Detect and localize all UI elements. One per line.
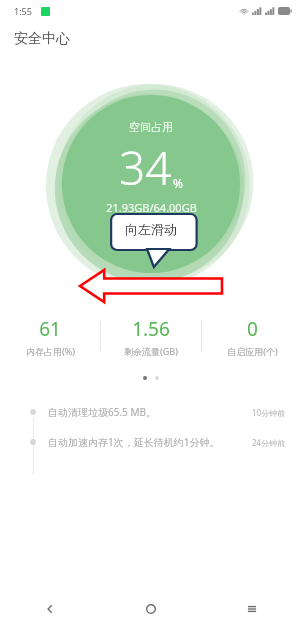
staticText: 0: [247, 316, 258, 342]
button[interactable]: 61: [0, 316, 100, 357]
staticText: 1.56: [132, 316, 170, 342]
staticText: %: [173, 175, 183, 191]
button[interactable]: Home: [100, 590, 201, 628]
staticText: 自动加速内存1次，延长待机约1分钟。: [48, 435, 220, 449]
button[interactable]: 0: [202, 316, 302, 357]
button[interactable]: 1.56: [101, 316, 201, 357]
staticText: 空间占用: [129, 120, 173, 134]
staticText: 21.93GB/64.00GB: [106, 200, 197, 215]
staticText: 自动清理垃圾65.5 MB。: [48, 405, 157, 419]
staticText: 34: [119, 136, 172, 199]
button[interactable]: Recents: [201, 590, 302, 628]
button[interactable]: 自动清理垃圾65.5 MB。: [0, 402, 302, 422]
staticText: 24分钟前: [252, 437, 286, 448]
staticText: 安全中心: [14, 30, 70, 48]
button[interactable]: 自动加速内存1次，延长待机约1分钟。: [0, 432, 302, 452]
staticText: 10分钟前: [252, 407, 286, 418]
staticText: 剩余流量(GB): [124, 345, 178, 357]
staticText: 向左滑动: [125, 221, 177, 237]
staticText: 自启应用(个): [227, 345, 278, 357]
button[interactable]: Back: [0, 590, 100, 628]
staticText: 1:55: [14, 5, 32, 17]
staticText: 内存占用(%): [26, 345, 75, 357]
staticText: 61: [39, 316, 61, 342]
